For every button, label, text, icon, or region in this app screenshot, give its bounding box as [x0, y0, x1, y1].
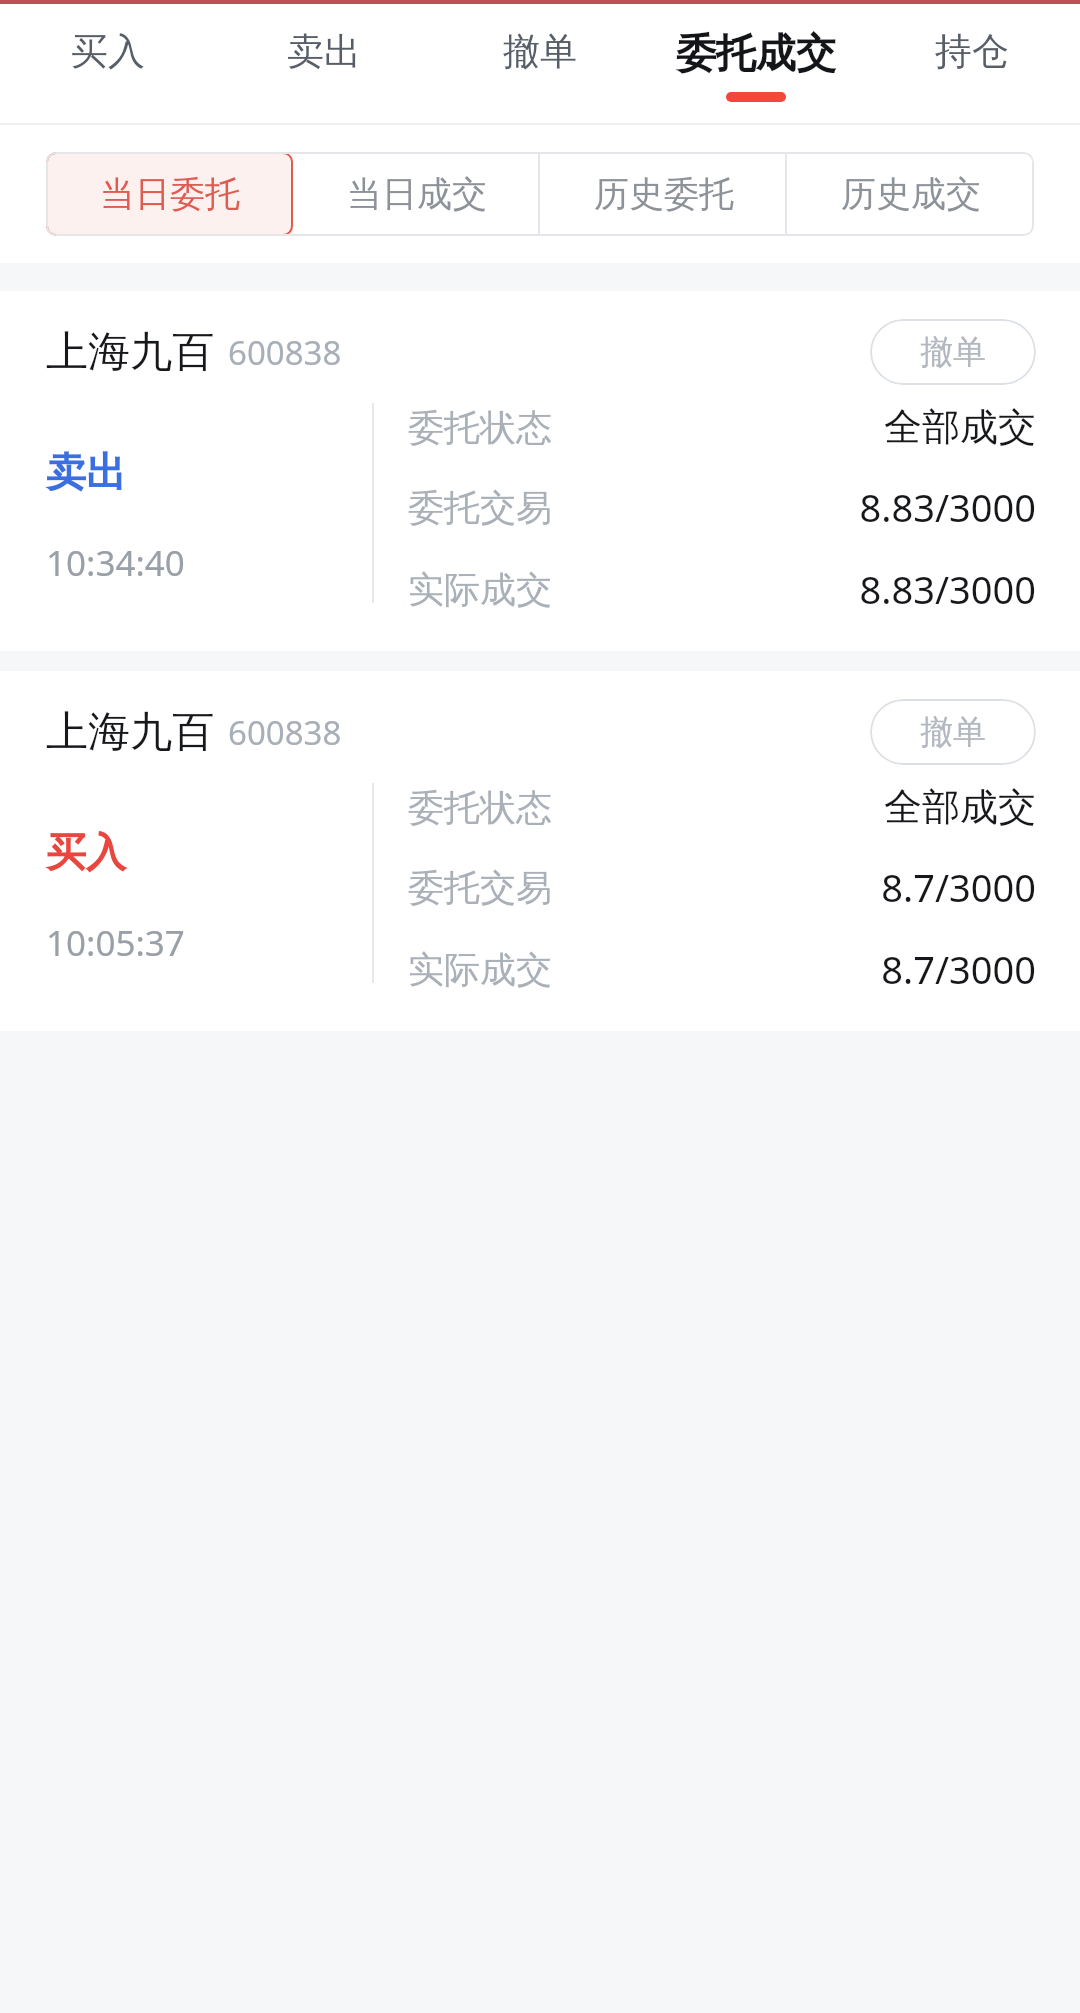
staticText: 上海九百	[46, 326, 214, 379]
staticText: 卖出	[287, 28, 361, 75]
staticText: 委托交易	[408, 485, 552, 530]
staticText: 8.83/3000	[859, 481, 1036, 533]
staticText: 买入	[46, 827, 126, 877]
staticText: 委托交易	[408, 865, 552, 910]
staticText: 历史成交	[841, 172, 981, 216]
button[interactable]: 撤单	[870, 699, 1036, 765]
staticText: 委托成交	[676, 28, 836, 78]
staticText: 历史委托	[594, 172, 734, 216]
staticText: 持仓	[935, 28, 1009, 75]
staticText: 8.7/3000	[881, 861, 1036, 913]
staticText: 8.7/3000	[881, 943, 1036, 995]
staticText: 当日委托	[100, 172, 240, 216]
staticText: 委托状态	[408, 785, 552, 830]
button[interactable]: 历史委托	[540, 152, 787, 236]
button[interactable]: 撤单	[432, 4, 648, 125]
staticText: 上海九百	[46, 706, 214, 759]
staticText: 600838	[228, 710, 342, 755]
staticText: 10:05:37	[46, 919, 185, 967]
button[interactable]: 历史成交	[787, 152, 1034, 236]
button[interactable]: 委托成交	[648, 4, 864, 125]
staticText: 8.83/3000	[859, 563, 1036, 615]
button[interactable]: 当日成交	[293, 152, 540, 236]
staticText: 10:34:40	[46, 539, 185, 587]
button[interactable]: 撤单	[870, 319, 1036, 385]
staticText: 实际成交	[408, 947, 552, 992]
staticText: 全部成交	[884, 403, 1036, 451]
button[interactable]: 卖出	[216, 4, 432, 125]
button[interactable]: 上海九百	[0, 291, 1080, 651]
staticText: 卖出	[46, 447, 126, 497]
staticText: 委托状态	[408, 405, 552, 450]
staticText: 买入	[71, 28, 145, 75]
button[interactable]: 买入	[0, 4, 216, 125]
staticText: 撤单	[920, 711, 986, 753]
staticText: 600838	[228, 330, 342, 375]
staticText: 当日成交	[347, 172, 487, 216]
button[interactable]: 当日委托	[46, 152, 293, 236]
staticText: 实际成交	[408, 567, 552, 612]
button[interactable]: 上海九百	[0, 671, 1080, 1031]
staticText: 撤单	[920, 331, 986, 373]
button[interactable]: 持仓	[864, 4, 1080, 125]
staticText: 撤单	[503, 28, 577, 75]
staticText: 全部成交	[884, 783, 1036, 831]
